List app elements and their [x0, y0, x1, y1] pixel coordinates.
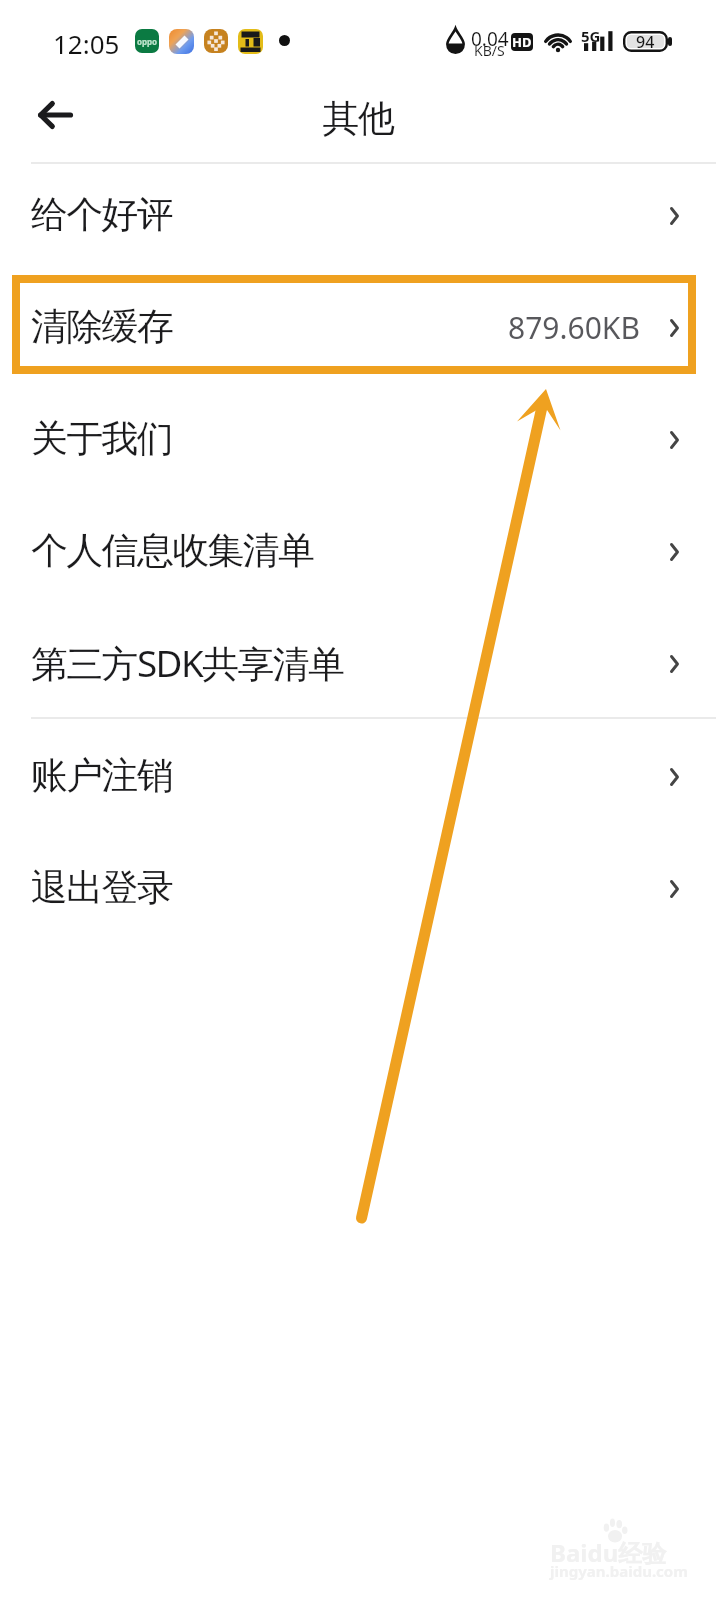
staticText: jingyan.baidu.com [550, 1561, 688, 1581]
staticText: 12:05 [53, 26, 120, 61]
staticText: 账户注销 [31, 753, 173, 799]
staticText: 退出登录 [31, 865, 173, 911]
button[interactable]: 退出登录 [0, 832, 716, 944]
button[interactable]: Back [26, 86, 84, 144]
staticText: 关于我们 [31, 416, 173, 462]
staticText: oppo [137, 36, 158, 47]
staticText: 0.04 [471, 26, 509, 52]
button[interactable]: 关于我们 [0, 383, 716, 495]
staticText: 94 [636, 31, 655, 52]
staticText: Baidu经验 [550, 1536, 667, 1569]
staticText: 5G [581, 26, 601, 46]
staticText: KB/S [474, 41, 505, 60]
staticText: 给个好评 [31, 192, 173, 238]
button[interactable]: 第三方SDK共享清单 [0, 607, 716, 719]
button[interactable]: 个人信息收集清单 [0, 495, 716, 607]
staticText: 其他 [322, 95, 394, 142]
staticText: 个人信息收集清单 [31, 528, 314, 574]
staticText: 879.60KB [508, 307, 640, 348]
staticText: 清除缓存 [31, 304, 173, 350]
button[interactable]: 清除缓存 [0, 271, 716, 383]
staticText: 第三方SDK共享清单 [31, 638, 344, 688]
button[interactable]: 账户注销 [0, 720, 716, 832]
button[interactable]: 给个好评 [0, 159, 716, 271]
staticText: HD [512, 33, 532, 51]
